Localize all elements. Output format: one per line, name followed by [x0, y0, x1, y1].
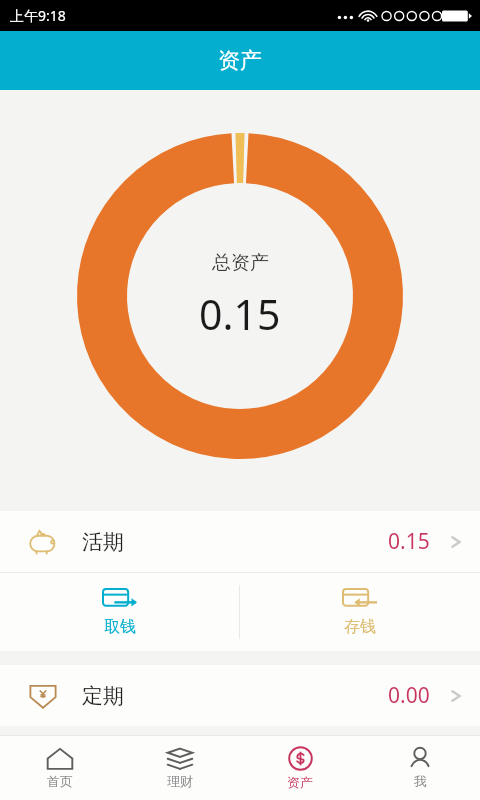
- staticText: 总资产: [212, 251, 269, 275]
- staticText: 理财: [167, 773, 193, 789]
- staticText: 我: [414, 773, 427, 789]
- staticText: 首页: [47, 773, 73, 789]
- button[interactable]: 理财: [120, 736, 240, 800]
- staticText: 定期: [82, 683, 124, 709]
- staticText: 资产: [287, 774, 313, 790]
- button[interactable]: 取钱: [0, 573, 239, 651]
- staticText: 上午9:18: [10, 6, 66, 25]
- button[interactable]: 活期: [0, 511, 480, 572]
- button[interactable]: 存钱: [240, 573, 480, 651]
- staticText: 0.15: [388, 527, 430, 556]
- staticText: 活期: [82, 529, 124, 555]
- button[interactable]: 定期: [0, 665, 480, 726]
- button[interactable]: 我: [360, 736, 480, 800]
- button[interactable]: 首页: [0, 736, 120, 800]
- staticText: 0.15: [199, 286, 281, 342]
- staticText: 取钱: [104, 617, 136, 637]
- staticText: 0.00: [388, 681, 430, 710]
- staticText: 存钱: [344, 617, 376, 637]
- button[interactable]: 资产: [240, 736, 360, 800]
- staticText: 资产: [218, 47, 262, 75]
